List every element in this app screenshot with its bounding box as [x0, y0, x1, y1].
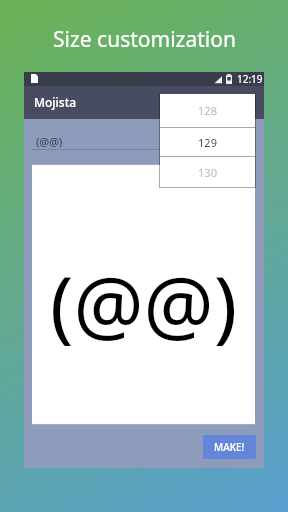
button[interactable]: 129 [160, 128, 255, 156]
staticText: 129 [198, 135, 217, 150]
staticText: Mojista [34, 94, 77, 110]
staticText: (@@) [50, 251, 238, 357]
button[interactable]: MAKE! [203, 435, 256, 459]
staticText: 128 [198, 103, 217, 118]
staticText: 12:19 [237, 72, 263, 86]
staticText: Size customization [53, 25, 236, 54]
staticText: (@@) [36, 134, 63, 149]
staticText: MAKE! [214, 440, 245, 454]
button[interactable]: 128 [160, 94, 255, 127]
staticText: 130 [198, 165, 217, 180]
button[interactable]: 130 [160, 157, 255, 187]
